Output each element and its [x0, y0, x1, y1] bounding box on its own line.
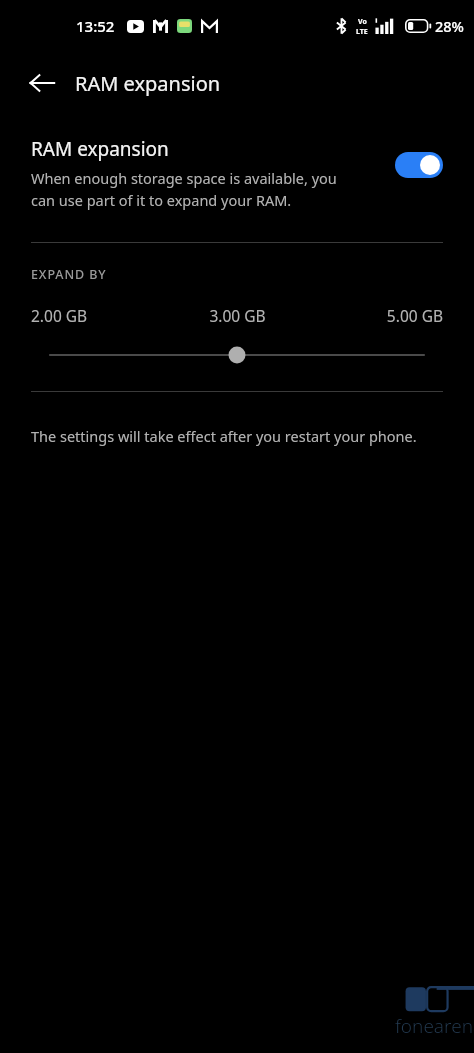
staticText: RAM expansion	[31, 136, 169, 162]
button[interactable]: RAM expansion toggle, on	[395, 152, 443, 178]
staticText: 5.00 GB	[306, 305, 443, 326]
staticText: 13:52	[76, 16, 115, 36]
staticText: 28%	[435, 16, 464, 36]
staticText: RAM expansion	[75, 70, 221, 97]
staticText: EXPAND BY	[31, 266, 107, 283]
button[interactable]: Back	[18, 59, 66, 107]
button[interactable]: Expand by amount slider	[0, 342, 474, 368]
staticText: Vo	[358, 17, 367, 27]
button[interactable]: RAM expansion	[0, 134, 474, 212]
staticText: 2.00 GB	[31, 305, 169, 326]
staticText: When enough storage space is available, …	[31, 168, 355, 210]
staticText: LTE	[356, 27, 368, 35]
staticText: The settings will take effect after you …	[31, 426, 417, 446]
staticText: 3.00 GB	[169, 305, 306, 326]
staticText: fonearena	[395, 1013, 474, 1039]
